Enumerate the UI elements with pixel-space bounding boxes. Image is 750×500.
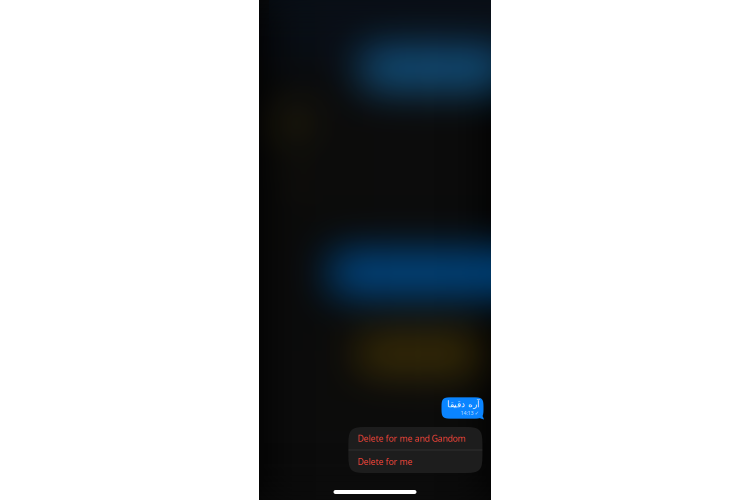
staticText: Delete for me [357, 456, 412, 468]
button[interactable]: Delete for me and Gandom [348, 427, 482, 450]
staticText: 14:13 ✓ [460, 409, 478, 417]
staticText: Delete for me and Gandom [357, 432, 465, 444]
staticText: آره دقیقا [446, 399, 478, 409]
button[interactable]: Delete for me [348, 450, 482, 473]
